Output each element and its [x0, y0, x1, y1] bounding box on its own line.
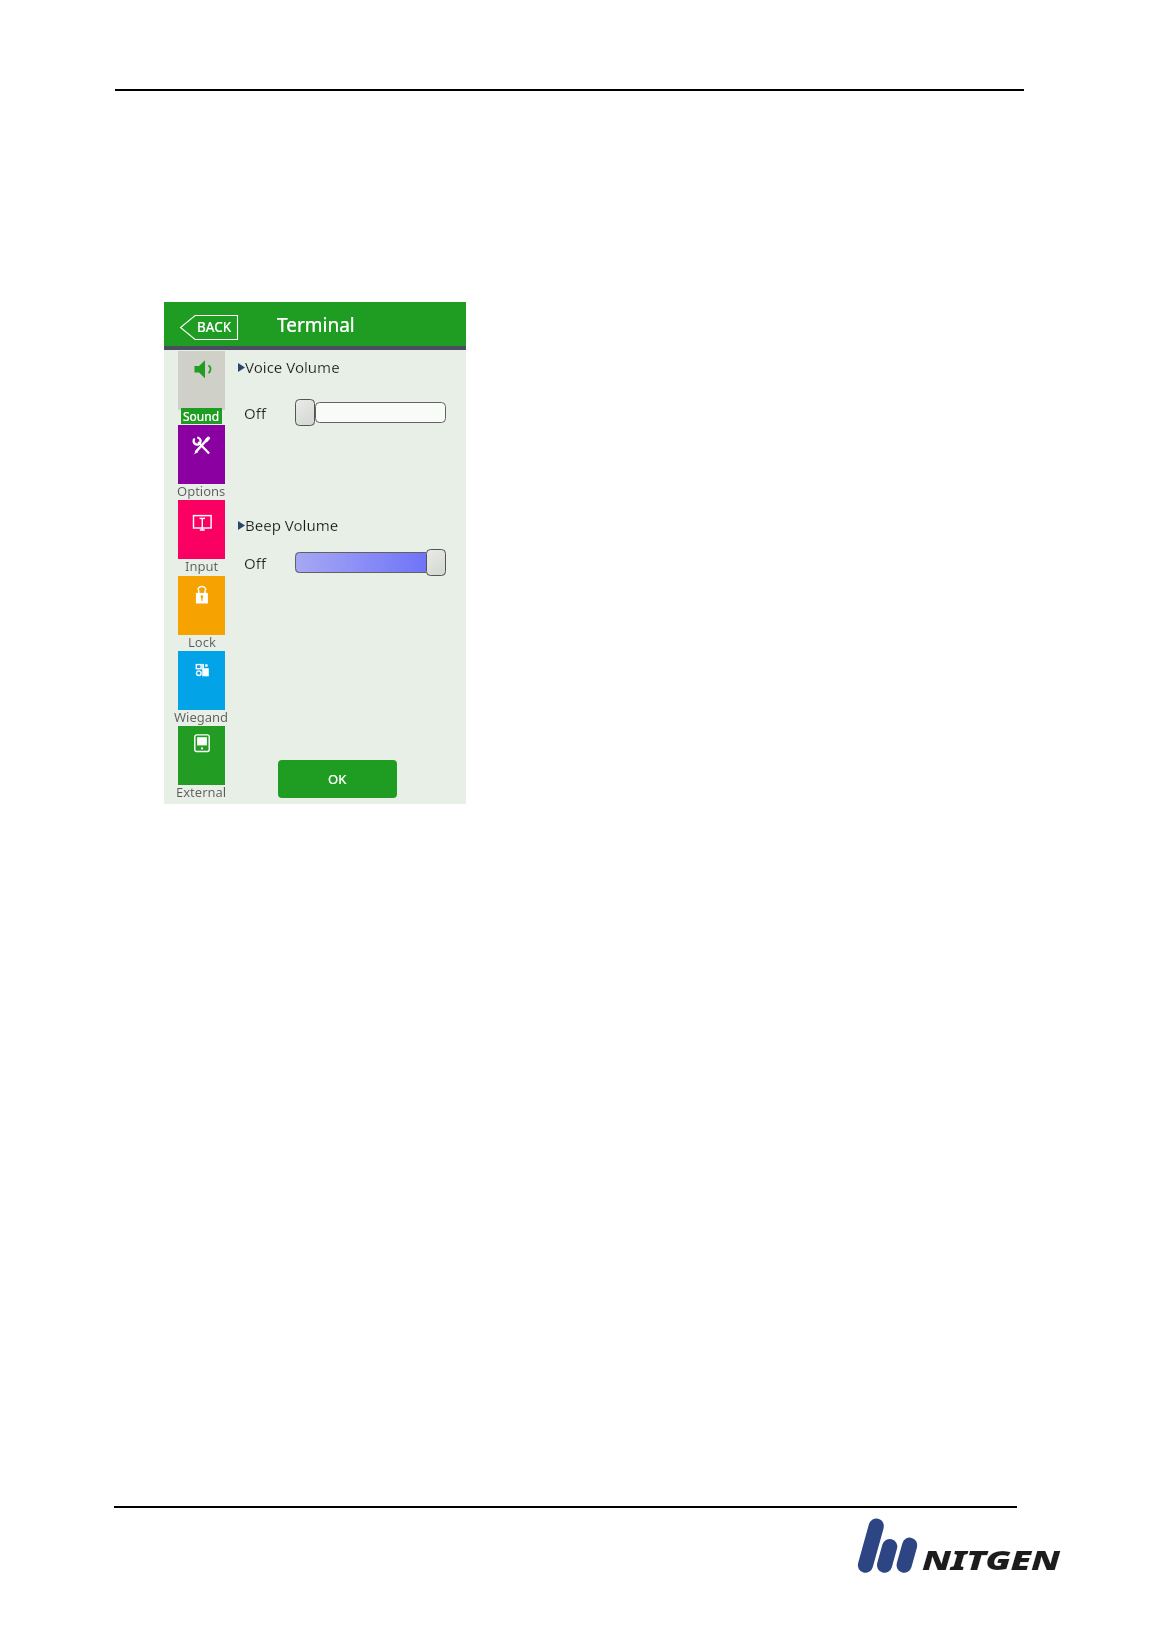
- staticText: Off: [244, 553, 267, 573]
- button[interactable]: Sound: [166, 351, 237, 425]
- button[interactable]: Lock: [166, 576, 237, 650]
- staticText: OK: [328, 770, 347, 788]
- button[interactable]: OK: [278, 760, 397, 798]
- button[interactable]: Back: [180, 315, 238, 340]
- staticText: Options: [177, 482, 226, 500]
- staticText: Voice Volume: [245, 357, 340, 377]
- staticText: Lock: [188, 633, 216, 651]
- staticText: Terminal: [277, 312, 355, 338]
- button[interactable]: Voice volume slider: [295, 399, 446, 426]
- staticText: Wiegand: [174, 708, 229, 726]
- staticText: Beep Volume: [245, 515, 339, 535]
- button[interactable]: Wiegand: [166, 651, 237, 725]
- staticText: BACK: [197, 318, 232, 336]
- staticText: Off: [244, 403, 267, 423]
- button[interactable]: Input: [166, 500, 237, 574]
- button[interactable]: Options: [166, 425, 237, 499]
- staticText: Sound: [183, 408, 220, 424]
- staticText: External: [176, 783, 227, 801]
- staticText: NITGEN: [922, 1542, 1060, 1578]
- button[interactable]: External: [166, 726, 237, 800]
- button[interactable]: Beep volume slider: [295, 549, 446, 576]
- staticText: Input: [185, 557, 219, 575]
